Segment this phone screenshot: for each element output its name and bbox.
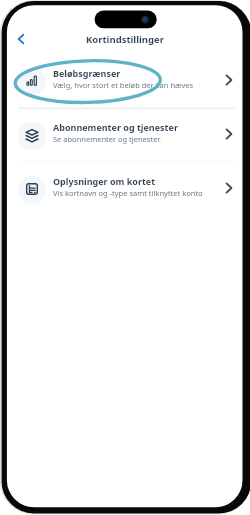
staticText: Vælg, hvor stort et beløb der kan hæves (53, 80, 194, 90)
staticText: Kortindstillinger (86, 33, 164, 46)
staticText: Se abonnementer og tjenester (53, 134, 161, 144)
button[interactable]: Beløbsgrænser (8, 58, 242, 105)
other: Open (222, 127, 236, 141)
other: Open (222, 181, 236, 195)
staticText: Beløbsgrænser (53, 67, 121, 79)
other: Open (222, 73, 236, 87)
staticText: Oplysninger om kortet (53, 175, 156, 187)
button[interactable]: Back (13, 31, 29, 47)
button[interactable]: Abonnementer og tjenester (8, 112, 242, 159)
button[interactable]: Oplysninger om kortet (8, 166, 242, 213)
staticText: Vis kortnavn og -type samt tilknyttet ko… (53, 188, 203, 198)
staticText: Abonnementer og tjenester (53, 121, 178, 133)
